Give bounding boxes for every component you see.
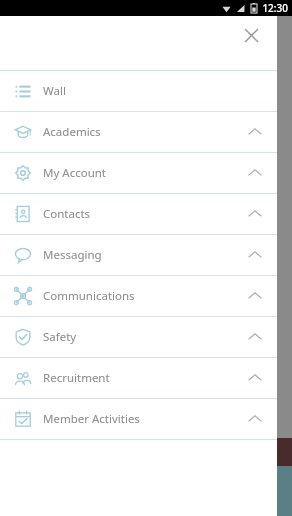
staticText: Recruitment bbox=[43, 370, 110, 386]
button[interactable]: Academics bbox=[0, 112, 277, 152]
staticText: My Account bbox=[43, 165, 106, 181]
button[interactable]: Member Activities bbox=[0, 399, 277, 439]
button[interactable]: Recruitment bbox=[0, 358, 277, 398]
staticText: 12:30 bbox=[262, 1, 288, 15]
button[interactable]: Communications bbox=[0, 276, 277, 316]
button[interactable]: Messaging bbox=[0, 235, 277, 275]
staticText: Contacts bbox=[43, 206, 91, 222]
button[interactable]: Wall bbox=[0, 71, 277, 111]
button[interactable]: Safety bbox=[0, 317, 277, 357]
button[interactable]: My Account bbox=[0, 153, 277, 193]
button[interactable]: Contacts bbox=[0, 194, 277, 234]
staticText: Wall bbox=[43, 83, 66, 99]
staticText: Messaging bbox=[43, 247, 102, 263]
button[interactable]: Close bbox=[237, 21, 265, 49]
staticText: Academics bbox=[43, 124, 101, 140]
staticText: Safety bbox=[43, 329, 77, 345]
staticText: Communications bbox=[43, 288, 135, 304]
staticText: Member Activities bbox=[43, 411, 140, 427]
